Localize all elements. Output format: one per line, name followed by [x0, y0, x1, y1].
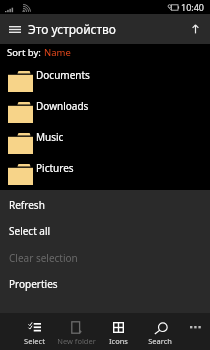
button[interactable]: Icons: [97, 313, 139, 350]
staticText: 10:40: [181, 1, 205, 13]
staticText: New folder: [57, 336, 96, 346]
button[interactable]: Downloads: [0, 97, 210, 128]
button[interactable]: New folder: [55, 313, 97, 350]
button[interactable]: Clear selection: [0, 245, 210, 271]
staticText: Name: [44, 46, 71, 59]
button[interactable]: Select: [13, 313, 55, 350]
staticText: Select all: [9, 224, 51, 238]
staticText: Select: [24, 336, 45, 346]
button[interactable]: More options: [181, 313, 210, 350]
staticText: Search: [148, 336, 172, 346]
button[interactable]: Search: [139, 313, 181, 350]
button[interactable]: Refresh: [0, 192, 210, 218]
staticText: Refresh: [9, 198, 45, 212]
staticText: Icons: [109, 336, 128, 346]
button[interactable]: Documents: [0, 66, 210, 97]
staticText: Downloads: [36, 99, 89, 113]
button[interactable]: Pictures: [0, 159, 210, 190]
staticText: Pictures: [36, 161, 74, 175]
button[interactable]: Music: [0, 128, 210, 159]
button[interactable]: Menu: [3, 18, 26, 41]
staticText: Sort by:: [7, 46, 44, 59]
staticText: Documents: [36, 68, 90, 82]
staticText: Clear selection: [9, 251, 78, 265]
staticText: Music: [36, 130, 64, 144]
button[interactable]: Select all: [0, 218, 210, 244]
button[interactable]: Sort by:: [7, 45, 71, 59]
button[interactable]: Properties: [0, 271, 210, 297]
button[interactable]: Up one level: [183, 17, 207, 41]
staticText: Это устройство: [28, 21, 116, 37]
staticText: Properties: [9, 277, 58, 291]
